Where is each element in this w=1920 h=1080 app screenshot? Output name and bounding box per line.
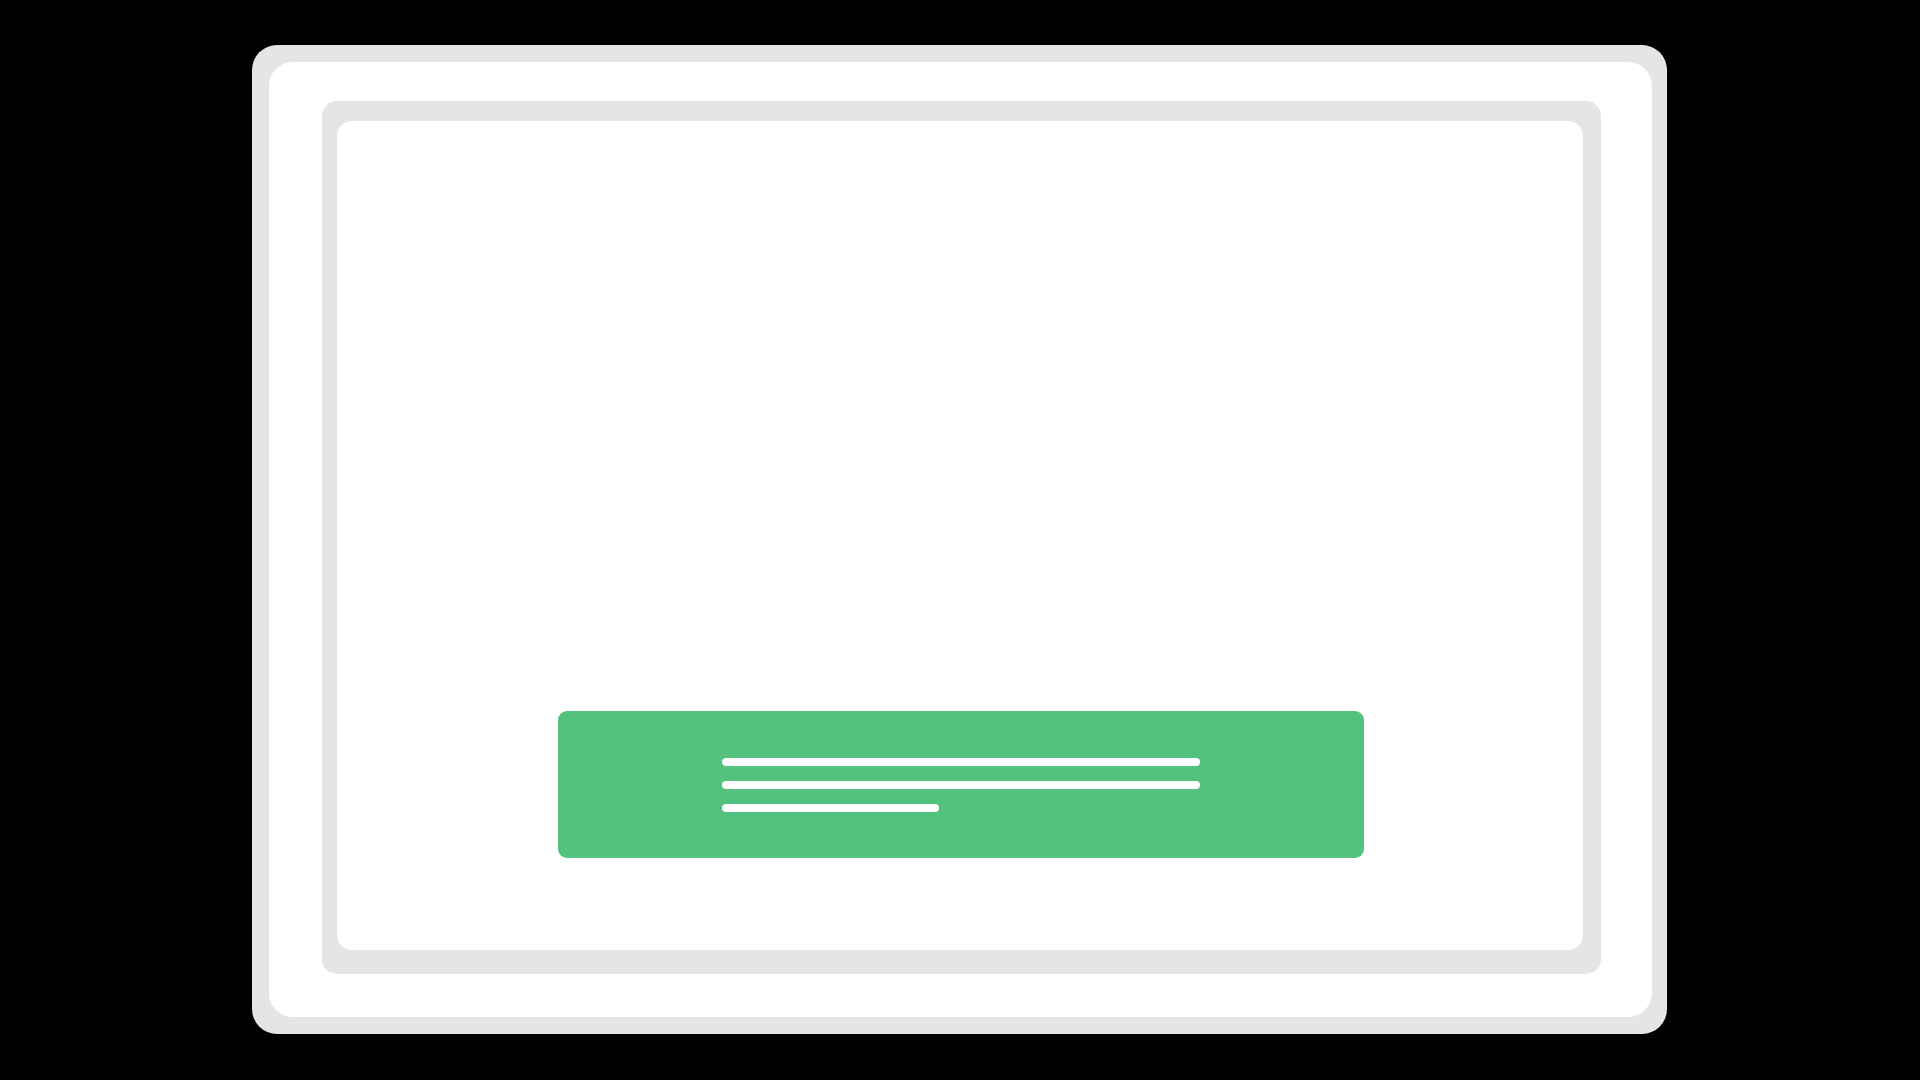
button[interactable]: Message bubble: [558, 711, 1364, 858]
